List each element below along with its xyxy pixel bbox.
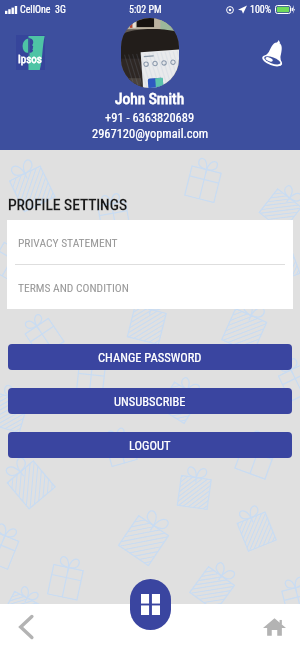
button[interactable]: Home bbox=[248, 604, 300, 649]
button[interactable]: TERMS AND CONDITION bbox=[7, 265, 293, 309]
staticText: TERMS AND CONDITION bbox=[18, 281, 129, 294]
staticText: CHANGE PASSWORD bbox=[98, 350, 202, 365]
staticText: 3G bbox=[55, 4, 66, 16]
staticText: 100% bbox=[250, 4, 272, 16]
staticText: CellOne bbox=[20, 4, 51, 16]
button[interactable]: Notifications bbox=[261, 39, 289, 67]
button[interactable]: Menu bbox=[130, 579, 171, 630]
button[interactable]: Back bbox=[0, 604, 52, 649]
button[interactable]: PRIVACY STATEMENT bbox=[7, 220, 293, 264]
button[interactable]: UNSUBSCRIBE bbox=[8, 388, 292, 414]
staticText: John Smith bbox=[115, 90, 185, 108]
staticText: PROFILE SETTINGS bbox=[8, 196, 127, 214]
staticText: LOGOUT bbox=[129, 438, 171, 453]
staticText: UNSUBSCRIBE bbox=[114, 394, 186, 409]
staticText: 2967120@yopmail.com bbox=[92, 126, 209, 141]
button[interactable]: CHANGE PASSWORD bbox=[8, 344, 292, 370]
staticText: Ipsos bbox=[18, 53, 42, 66]
staticText: +91 - 6363820689 bbox=[105, 110, 195, 125]
staticText: PRIVACY STATEMENT bbox=[18, 236, 118, 249]
staticText: 5:02 PM bbox=[129, 4, 162, 16]
button[interactable]: LOGOUT bbox=[8, 432, 292, 458]
